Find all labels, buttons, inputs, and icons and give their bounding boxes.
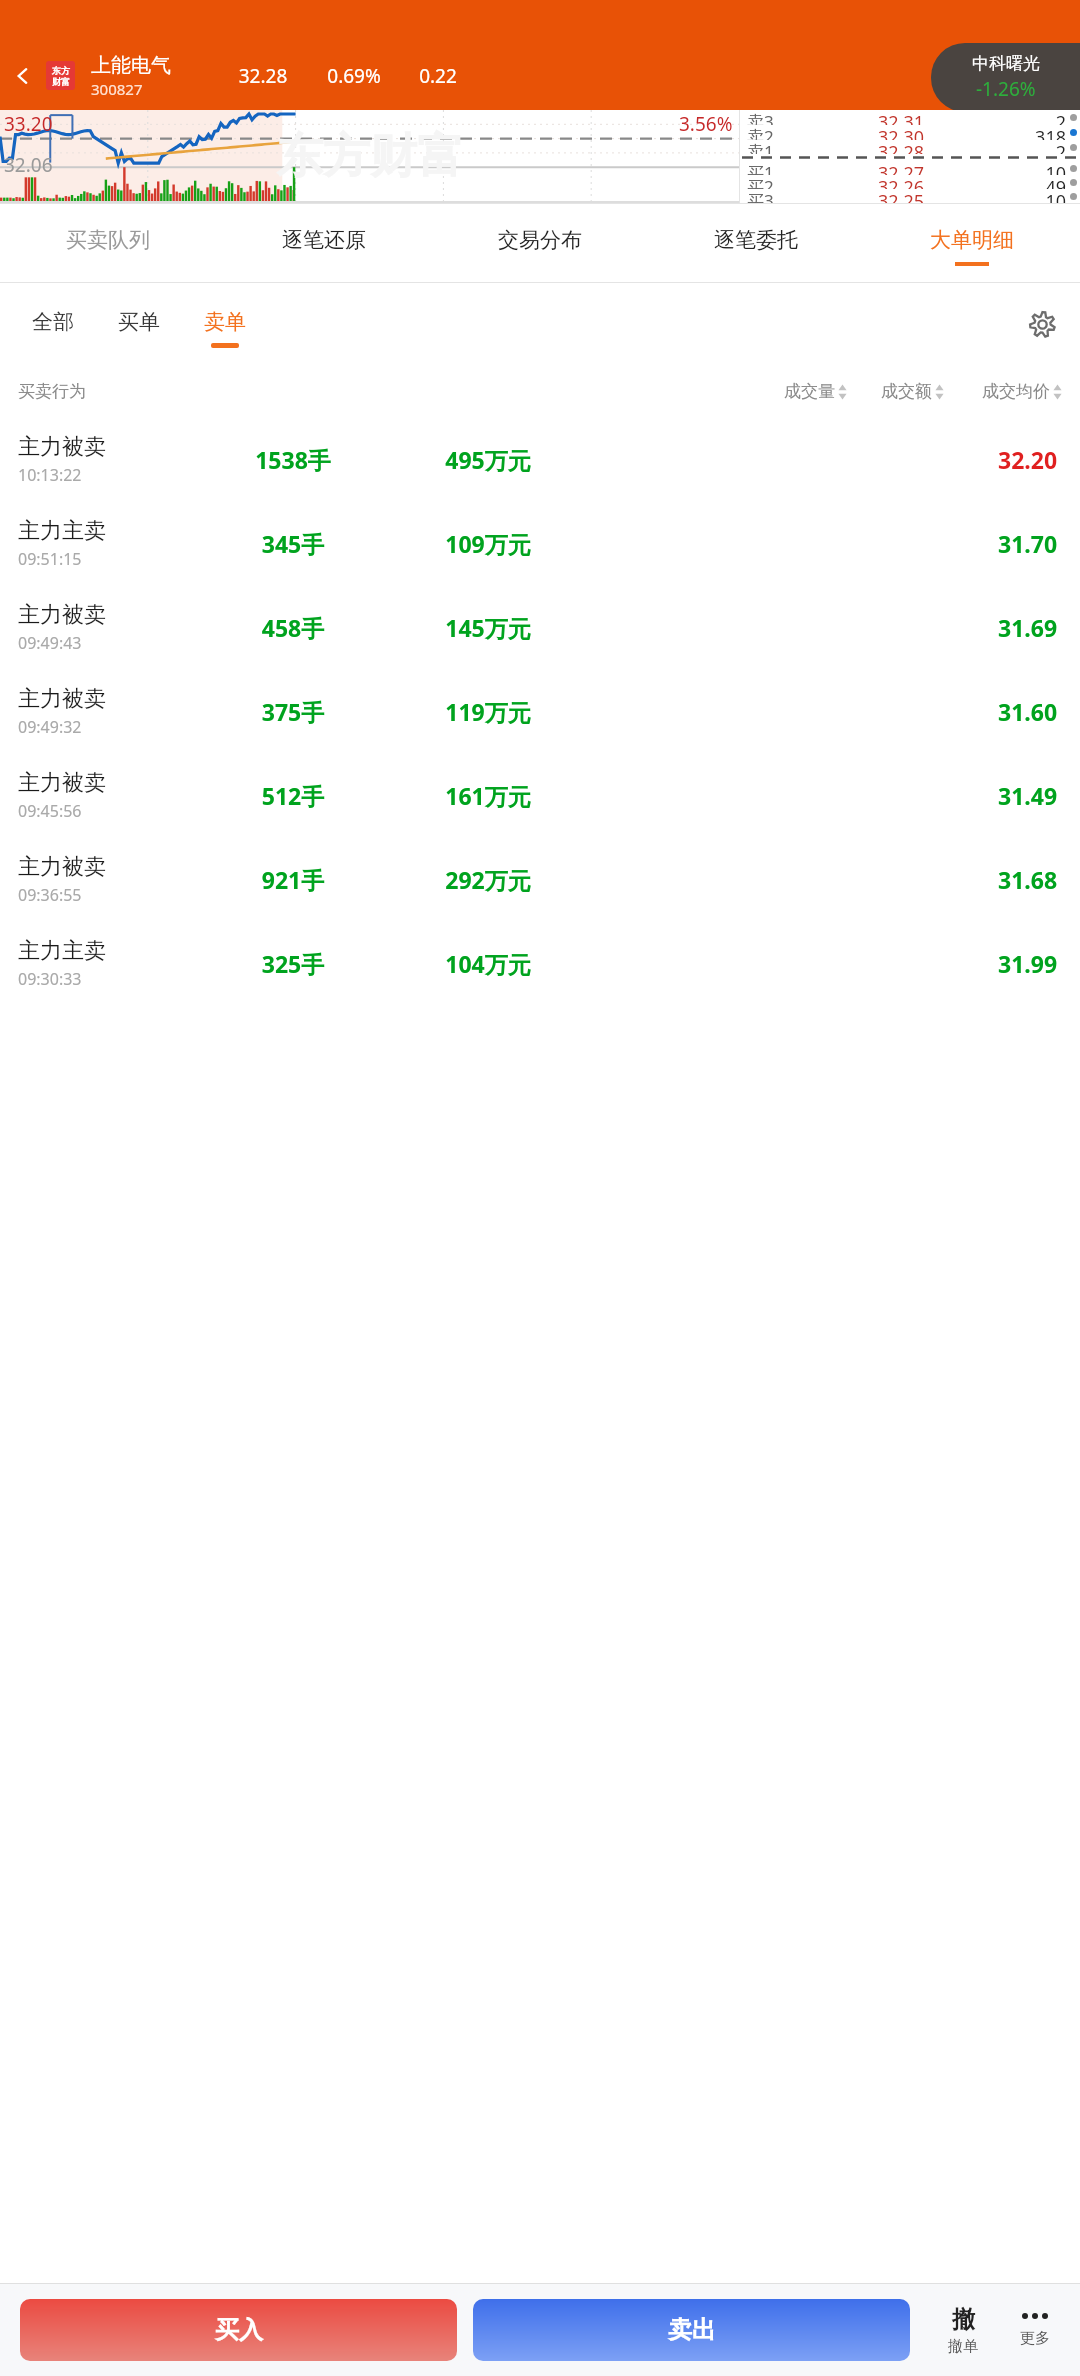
button[interactable]: Back	[0, 41, 46, 110]
staticText: 119万元	[388, 696, 588, 727]
staticText: 买2	[747, 175, 774, 189]
button[interactable]: 买卖队列	[0, 204, 216, 282]
button[interactable]: 卖1	[740, 140, 1080, 154]
staticText: 主力主卖	[18, 937, 106, 965]
staticText: 卖1	[747, 140, 774, 154]
staticText: 2	[1018, 140, 1066, 154]
button[interactable]: 主力被卖	[0, 417, 1080, 501]
staticText: 104万元	[388, 948, 588, 979]
button[interactable]: 主力被卖	[0, 669, 1080, 753]
staticText: 10	[1018, 161, 1066, 175]
staticText: 512手	[198, 780, 388, 811]
staticText: 成交均价	[982, 381, 1050, 402]
staticText: 32.25	[784, 189, 1018, 203]
staticText: 卖出	[668, 2315, 716, 2345]
button[interactable]: 东方财富	[46, 61, 75, 90]
staticText: 318	[1018, 125, 1066, 140]
button[interactable]: 撤	[932, 2284, 994, 2376]
staticText: 卖单	[204, 309, 246, 335]
staticText: 更多	[1020, 2329, 1050, 2348]
button[interactable]: 主力主卖	[0, 921, 1080, 1005]
staticText: 2	[1018, 110, 1066, 125]
staticText: 10	[1018, 189, 1066, 203]
button[interactable]: 卖3	[740, 110, 1080, 125]
staticText: 上能电气	[91, 53, 171, 78]
button[interactable]: 主力主卖	[0, 501, 1080, 585]
staticText: 345手	[198, 528, 388, 559]
button[interactable]: 逐笔委托	[648, 204, 864, 282]
staticText: 主力被卖	[18, 853, 106, 881]
staticText: 09:51:15	[18, 548, 82, 570]
button[interactable]: 逐笔还原	[216, 204, 432, 282]
staticText: 东方	[52, 65, 70, 76]
staticText: 30.92	[4, 178, 53, 180]
button[interactable]: 主力被卖	[0, 585, 1080, 669]
staticText: 买3	[747, 189, 774, 203]
staticText: 31.49	[998, 780, 1058, 811]
staticText: 成交量	[784, 381, 835, 402]
staticText: 买卖队列	[66, 227, 150, 253]
staticText: 主力被卖	[18, 685, 106, 713]
staticText: 09:30:33	[18, 968, 82, 990]
button[interactable]: 主力被卖	[0, 753, 1080, 837]
staticText: 全部	[32, 309, 74, 335]
button[interactable]: 成交量	[784, 381, 847, 402]
staticText: 1538手	[198, 444, 388, 475]
staticText: 32.20	[998, 444, 1058, 475]
staticText: 33.20	[4, 111, 53, 137]
button[interactable]: 卖单	[190, 283, 260, 365]
button[interactable]: 全部	[18, 283, 88, 365]
button[interactable]: 成交额	[881, 381, 944, 402]
staticText: 主力主卖	[18, 517, 106, 545]
staticText: 921手	[198, 864, 388, 895]
staticText: 09:49:43	[18, 632, 82, 654]
staticText: 成交额	[881, 381, 932, 402]
staticText: 32.28	[221, 63, 305, 89]
staticText: 主力被卖	[18, 769, 106, 797]
staticText: 375手	[198, 696, 388, 727]
button[interactable]: 大单明细	[864, 204, 1080, 282]
button[interactable]: 成交均价	[982, 381, 1062, 402]
button[interactable]: 买单	[104, 283, 174, 365]
staticText: 31.68	[998, 864, 1058, 895]
staticText: 31.70	[998, 528, 1058, 559]
staticText: 161万元	[388, 780, 588, 811]
staticText: 撤	[952, 2305, 975, 2334]
staticText: 32.06	[4, 152, 53, 178]
button[interactable]: 买3	[740, 189, 1080, 203]
staticText: 32.30	[784, 125, 1018, 140]
staticText: 32.31	[784, 110, 1018, 125]
staticText: 交易分布	[498, 227, 582, 253]
button[interactable]: Settings	[1010, 292, 1074, 356]
staticText: 32.28	[784, 140, 1018, 154]
staticText: 中科曙光	[972, 53, 1040, 74]
staticText: 495万元	[388, 444, 588, 475]
button[interactable]: 卖出	[473, 2299, 910, 2361]
staticText: 卖2	[747, 125, 774, 140]
staticText: 458手	[198, 612, 388, 643]
staticText: 3.56%	[679, 111, 733, 137]
staticText: 0.22	[403, 63, 473, 89]
staticText: 逐笔还原	[282, 227, 366, 253]
staticText: 主力被卖	[18, 433, 106, 461]
button[interactable]: 买1	[740, 161, 1080, 175]
button[interactable]: 主力被卖	[0, 837, 1080, 921]
staticText: 31.99	[998, 948, 1058, 979]
staticText: 东方财富	[276, 127, 464, 186]
staticText: 31.69	[998, 612, 1058, 643]
staticText: 买卖行为	[18, 381, 188, 402]
staticText: 31.60	[998, 696, 1058, 727]
staticText: 买入	[215, 2315, 263, 2345]
staticText: 325手	[198, 948, 388, 979]
staticText: 买1	[747, 161, 774, 175]
staticText: 09:45:56	[18, 800, 82, 822]
button[interactable]: 买2	[740, 175, 1080, 189]
button[interactable]: 交易分布	[432, 204, 648, 282]
button[interactable]: 中科曙光	[931, 43, 1080, 112]
staticText: 09:49:32	[18, 716, 82, 738]
button[interactable]: 卖2	[740, 125, 1080, 140]
staticText: 卖3	[747, 110, 774, 125]
button[interactable]: 买入	[20, 2299, 457, 2361]
staticText: 大单明细	[930, 227, 1014, 253]
button[interactable]: 更多	[1004, 2284, 1066, 2376]
